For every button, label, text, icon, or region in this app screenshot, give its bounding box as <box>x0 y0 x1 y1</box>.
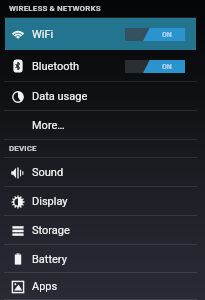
staticText: Storage <box>32 224 70 237</box>
staticText: WIRELESS & NETWORKS <box>9 4 101 13</box>
button[interactable]: Toggle switch, on <box>125 28 185 41</box>
button[interactable]: Sound <box>0 158 205 187</box>
staticText: Sound <box>32 166 64 179</box>
button[interactable]: More… <box>0 111 205 140</box>
staticText: WiFi <box>32 28 54 41</box>
staticText: Data usage <box>32 90 88 103</box>
staticText: ON <box>162 63 172 71</box>
button[interactable]: Display <box>0 187 205 216</box>
button[interactable]: Data usage <box>0 82 205 111</box>
button[interactable]: Bluetooth <box>0 50 205 82</box>
staticText: Display <box>32 195 68 208</box>
button[interactable]: Storage <box>0 216 205 245</box>
button[interactable]: Toggle switch, on <box>125 60 185 73</box>
staticText: DEVICE <box>9 144 37 153</box>
button[interactable]: WiFi <box>0 18 205 50</box>
staticText: Battery <box>32 253 67 266</box>
staticText: Apps <box>32 280 58 293</box>
button[interactable]: Battery <box>0 245 205 273</box>
staticText: Bluetooth <box>32 60 80 73</box>
staticText: More… <box>32 119 65 132</box>
staticText: ON <box>162 31 172 39</box>
button[interactable]: Apps <box>0 273 205 300</box>
